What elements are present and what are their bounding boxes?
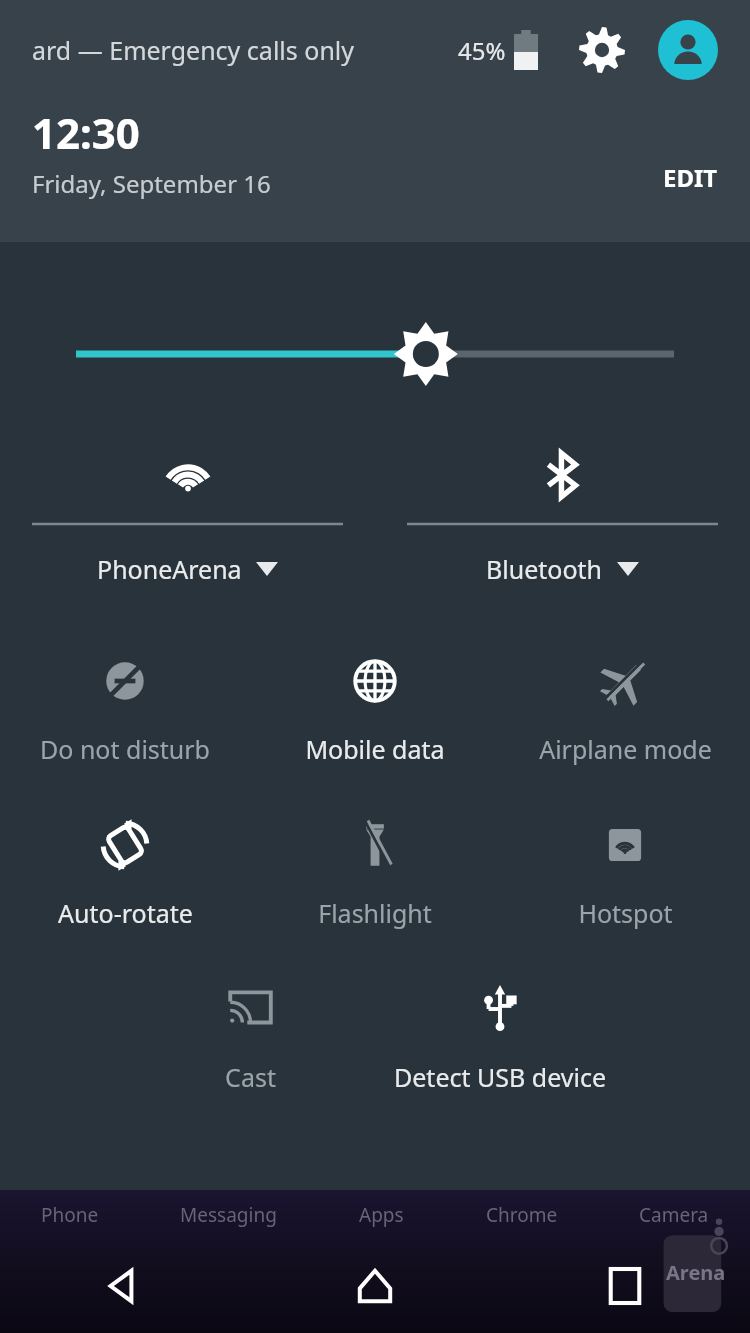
staticText: Bluetooth: [486, 552, 603, 586]
staticText: Arena: [666, 1259, 726, 1286]
button[interactable]: Flashlight: [250, 810, 500, 930]
button[interactable]: Home: [339, 1250, 411, 1322]
staticText: 12:30: [32, 104, 140, 161]
staticText: Auto-rotate: [58, 896, 193, 930]
button[interactable]: Chrome: [486, 1202, 558, 1228]
staticText: 45%: [458, 34, 506, 67]
button[interactable]: EDIT: [649, 153, 732, 202]
staticText: PhoneArena: [97, 552, 242, 586]
staticText: ard — Emergency calls only: [32, 33, 355, 67]
button[interactable]: Recents: [589, 1250, 661, 1322]
button[interactable]: Airplane mode: [500, 646, 750, 766]
button[interactable]: Brightness: [0, 322, 750, 386]
staticText: Do not disturb: [40, 732, 210, 766]
button[interactable]: Do not disturb: [0, 646, 250, 766]
button[interactable]: Messaging: [180, 1202, 277, 1228]
button[interactable]: User profile: [658, 20, 718, 80]
staticText: Hotspot: [578, 896, 673, 930]
button[interactable]: Camera: [639, 1202, 709, 1228]
staticText: Mobile data: [305, 732, 445, 766]
button[interactable]: Back: [89, 1250, 161, 1322]
staticText: Cast: [225, 1060, 276, 1094]
staticText: Detect USB device: [394, 1060, 606, 1094]
button[interactable]: Settings: [574, 22, 630, 78]
button[interactable]: Mobile data: [250, 646, 500, 766]
button[interactable]: Cast: [125, 974, 375, 1094]
button[interactable]: Hotspot: [500, 810, 750, 930]
staticText: Friday, September 16: [32, 167, 271, 200]
button[interactable]: Detect USB device: [375, 974, 625, 1094]
button[interactable]: Phone: [41, 1202, 99, 1228]
button[interactable]: Auto-rotate: [0, 810, 250, 930]
staticText: Airplane mode: [539, 732, 712, 766]
staticText: Flashlight: [318, 896, 432, 930]
staticText: EDIT: [663, 161, 718, 194]
button[interactable]: Apps: [359, 1202, 404, 1228]
button[interactable]: PhoneArena: [0, 444, 375, 586]
button[interactable]: Bluetooth: [375, 444, 750, 586]
